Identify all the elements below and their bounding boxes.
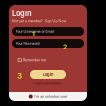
button[interactable]: Sign Up Now (44, 19, 66, 23)
staticText: 3 (17, 71, 22, 81)
staticText: Login (12, 9, 32, 18)
staticText: Forgot password? (33, 81, 62, 85)
staticText: Your Password (15, 41, 39, 46)
button[interactable]: Login (30, 70, 66, 79)
staticText: 2 (63, 43, 67, 51)
staticText: I'm an onlooker user (34, 94, 67, 99)
staticText: Sign Up Now (44, 19, 66, 23)
staticText: Remember me (23, 58, 46, 62)
staticText: 1 (32, 30, 35, 38)
button[interactable]: Forgot password? (33, 81, 62, 85)
button[interactable]: Remember me (18, 58, 46, 62)
staticText: Your Username or Email (15, 29, 54, 34)
staticText: Login (43, 72, 53, 77)
staticText: Not yet a member? (12, 19, 43, 23)
